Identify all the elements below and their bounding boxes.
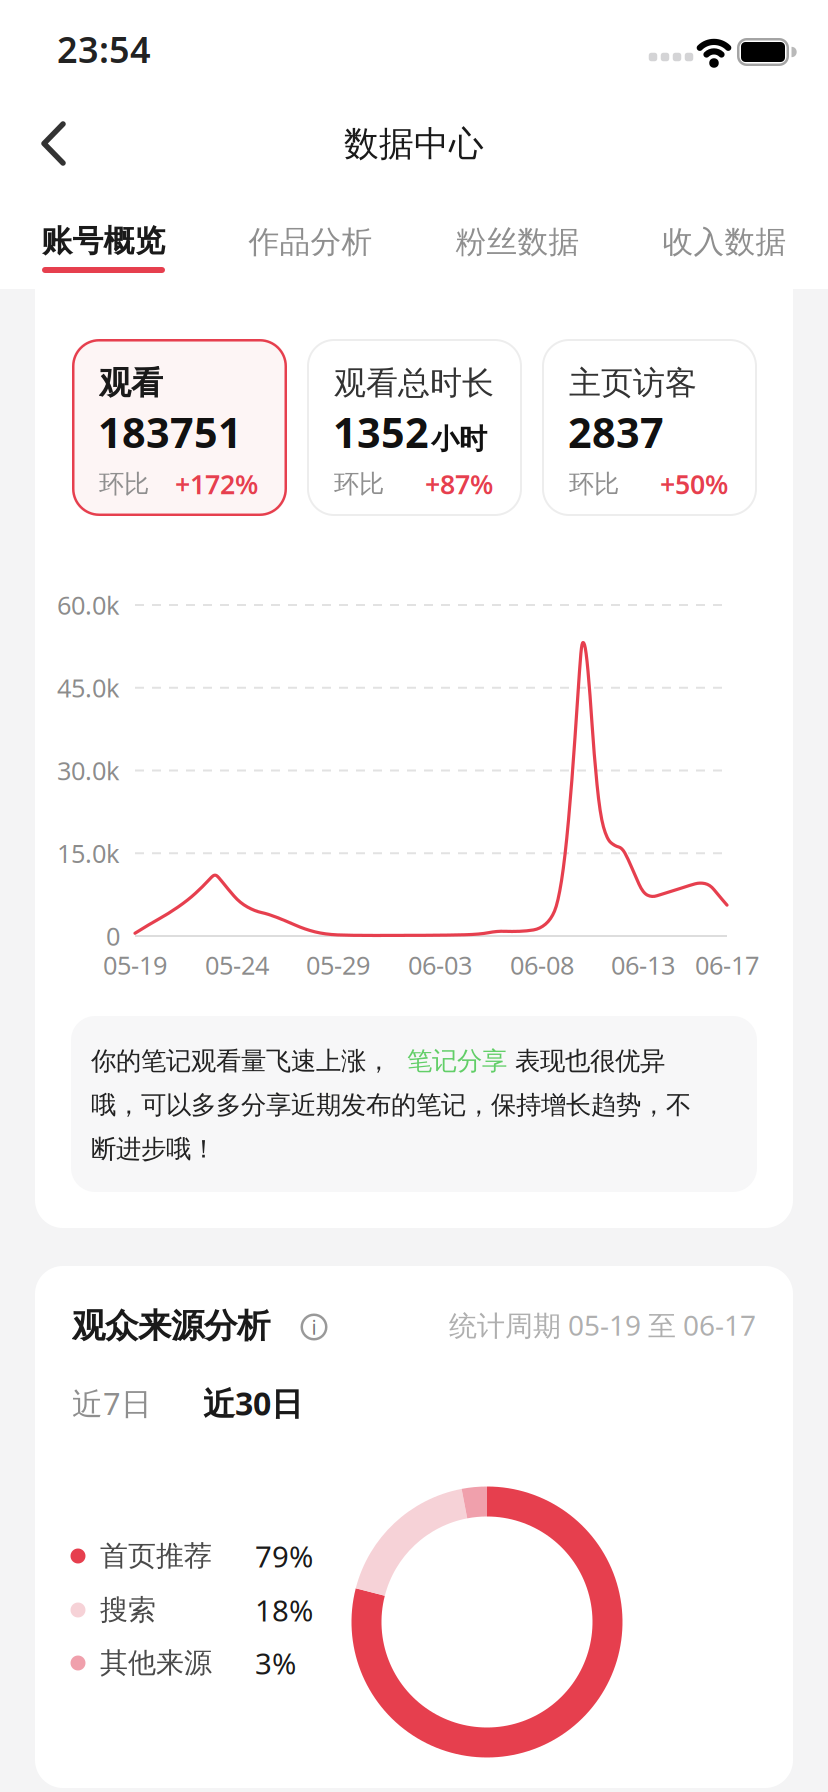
staticText: +172% — [175, 466, 258, 502]
staticText: 账号概览 — [41, 222, 165, 260]
button[interactable]: 收入数据 — [621, 208, 828, 275]
button[interactable]: 账号概览 — [0, 215, 207, 282]
staticText: 其他来源 — [100, 1646, 212, 1680]
staticText: 30.0k — [57, 754, 120, 787]
staticText: 0 — [106, 919, 120, 953]
staticText: 183751 — [98, 405, 242, 459]
staticText: 环比 — [99, 468, 149, 499]
staticText: 观看 — [99, 363, 163, 403]
staticText: 环比 — [334, 468, 384, 499]
staticText: 近30日 — [203, 1382, 303, 1424]
staticText: 表现也很优异 — [515, 1045, 665, 1076]
button[interactable]: 说明 — [294, 1307, 334, 1347]
staticText: +50% — [660, 466, 728, 502]
staticText: 05-19 — [103, 948, 167, 982]
staticText: 数据中心 — [344, 123, 484, 165]
staticText: 首页推荐 — [100, 1539, 212, 1573]
staticText: 近7日 — [72, 1383, 152, 1423]
button[interactable]: 观看 — [72, 339, 287, 516]
staticText: 2837 — [568, 405, 664, 459]
button[interactable]: 观看总时长 — [307, 339, 522, 516]
staticText: 3% — [255, 1643, 296, 1682]
staticText: 18% — [255, 1590, 313, 1629]
staticText: 60.0k — [57, 588, 120, 622]
staticText: 06-03 — [408, 948, 472, 982]
button[interactable]: 返回 — [36, 119, 84, 167]
staticText: 06-17 — [695, 948, 759, 982]
staticText: 统计周期 05-19 至 06-17 — [449, 1306, 756, 1344]
button[interactable]: 作品分析 — [207, 208, 414, 275]
staticText: 环比 — [569, 468, 619, 499]
staticText: 05-24 — [205, 948, 269, 982]
staticText: 观众来源分析 — [72, 1305, 270, 1346]
button[interactable]: 近30日 — [203, 1379, 333, 1427]
staticText: 笔记分享 — [391, 1045, 515, 1076]
button[interactable]: 粉丝数据 — [414, 208, 621, 275]
button[interactable]: 近7日 — [72, 1379, 182, 1427]
staticText: 小时 — [431, 422, 487, 456]
staticText: 收入数据 — [662, 223, 786, 261]
staticText: 粉丝数据 — [455, 223, 579, 261]
staticText: 你的笔记观看量飞速上涨， — [91, 1045, 391, 1076]
staticText: 23:54 — [57, 25, 151, 73]
staticText: 1352 — [333, 405, 429, 459]
staticText: 作品分析 — [248, 223, 372, 261]
staticText: i — [311, 1314, 316, 1340]
button[interactable]: 笔记分享 — [391, 1045, 515, 1076]
staticText: 06-13 — [611, 948, 675, 982]
staticText: 79% — [255, 1536, 313, 1575]
staticText: 45.0k — [57, 671, 120, 704]
staticText: 05-29 — [306, 948, 370, 982]
staticText: 哦，可以多多分享近期发布的笔记，保持增长趋势，不 — [91, 1089, 691, 1120]
staticText: 06-08 — [510, 948, 574, 982]
staticText: 断进步哦！ — [91, 1133, 216, 1164]
staticText: 观看总时长 — [334, 363, 494, 403]
staticText: 主页访客 — [569, 363, 697, 403]
staticText: 15.0k — [57, 836, 120, 870]
staticText: +87% — [425, 466, 493, 502]
staticText: 搜索 — [100, 1593, 156, 1627]
button[interactable]: 主页访客 — [542, 339, 757, 516]
